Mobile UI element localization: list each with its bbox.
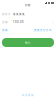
staticText: 付款 bbox=[25, 3, 31, 7]
button[interactable]: 金额 bbox=[0, 20, 56, 24]
staticText: 优惠 bbox=[2, 28, 8, 32]
button[interactable]: 更换支付方式 bbox=[34, 28, 52, 32]
staticText: 收款方 bbox=[2, 12, 11, 16]
staticText: 100.00 bbox=[13, 20, 24, 24]
button[interactable]: 联系客服 bbox=[22, 93, 34, 97]
button[interactable]: 确认 bbox=[2, 38, 54, 47]
staticText: 联系客服 bbox=[22, 93, 34, 97]
staticText: 更换支付方式 bbox=[34, 28, 52, 32]
staticText: › bbox=[52, 19, 53, 25]
staticText: 金额 bbox=[2, 20, 8, 24]
staticText: 某某某某 bbox=[13, 12, 25, 16]
button[interactable]: 优惠 bbox=[2, 28, 8, 32]
staticText: 确认 bbox=[25, 41, 31, 44]
